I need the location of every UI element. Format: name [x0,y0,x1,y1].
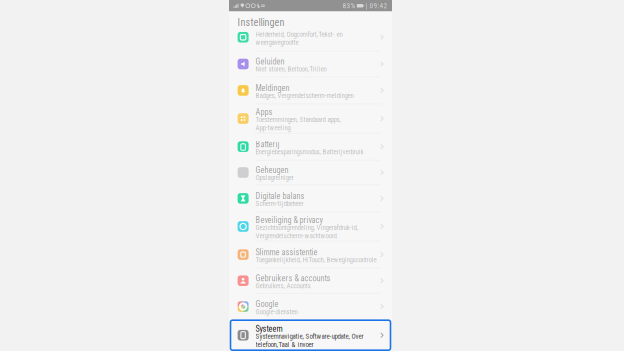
staticText: Instellingen [238,17,285,29]
staticText: Google-diensten [256,308,298,316]
button[interactable]: Helderheid, Oogcomfort, Tekst- en weerga… [229,24,392,51]
staticText: Digitale balans [256,191,305,201]
staticText: Gebruikers, Accounts [256,282,311,290]
staticText: 83% [342,1,355,10]
staticText: Google [256,299,279,309]
staticText: Helderheid, Oogcomfort, Tekst- en weerga… [256,30,343,46]
button[interactable]: Google [229,294,392,319]
staticText: Gezichtsontgrendeling, Vingerafdruk-id, … [256,224,358,240]
button[interactable]: Gebruikers & accounts [229,268,392,293]
staticText: Systeem [256,324,283,334]
button[interactable]: Systeem [229,320,392,350]
staticText: Systeemnavigatie, Software-update, Over … [256,332,364,348]
button[interactable]: Apps [229,104,392,133]
button[interactable]: Geheugen [229,160,392,184]
button[interactable]: Slimme assistentie [229,241,392,268]
staticText: Toestemmingen, Standaard apps, App-tweel… [256,116,341,132]
button[interactable]: Digitale balans [229,185,392,212]
staticText: Opslagreiniger [256,174,294,182]
staticText: | 09:42 [365,1,387,10]
staticText: Beveiliging & privacy [256,215,323,225]
staticText: Scherm-tijdbeheer [256,200,304,208]
button[interactable]: Batterij [229,133,392,160]
staticText: Toegankelijkheid, HiTouch, Bewegingscont… [256,256,377,264]
staticText: Niet storen, Beltoon, Trillen [256,65,327,73]
staticText: Batterij [256,139,280,149]
staticText: Gebruikers & accounts [256,274,331,283]
staticText: Energiebesparingsmodus, Batterijverbruik [256,148,364,156]
button[interactable]: Geluiden [229,51,392,77]
staticText: Apps [256,107,273,117]
staticText: Meldingen [256,83,290,93]
staticText: Geheugen [256,165,289,175]
staticText: Geluiden [256,57,285,67]
button[interactable]: Meldingen [229,77,392,104]
staticText: Badges, Vergrendelscherm-meldingen [256,92,354,100]
button[interactable]: Beveiliging & privacy [229,212,392,241]
staticText: Slimme assistentie [256,247,318,257]
